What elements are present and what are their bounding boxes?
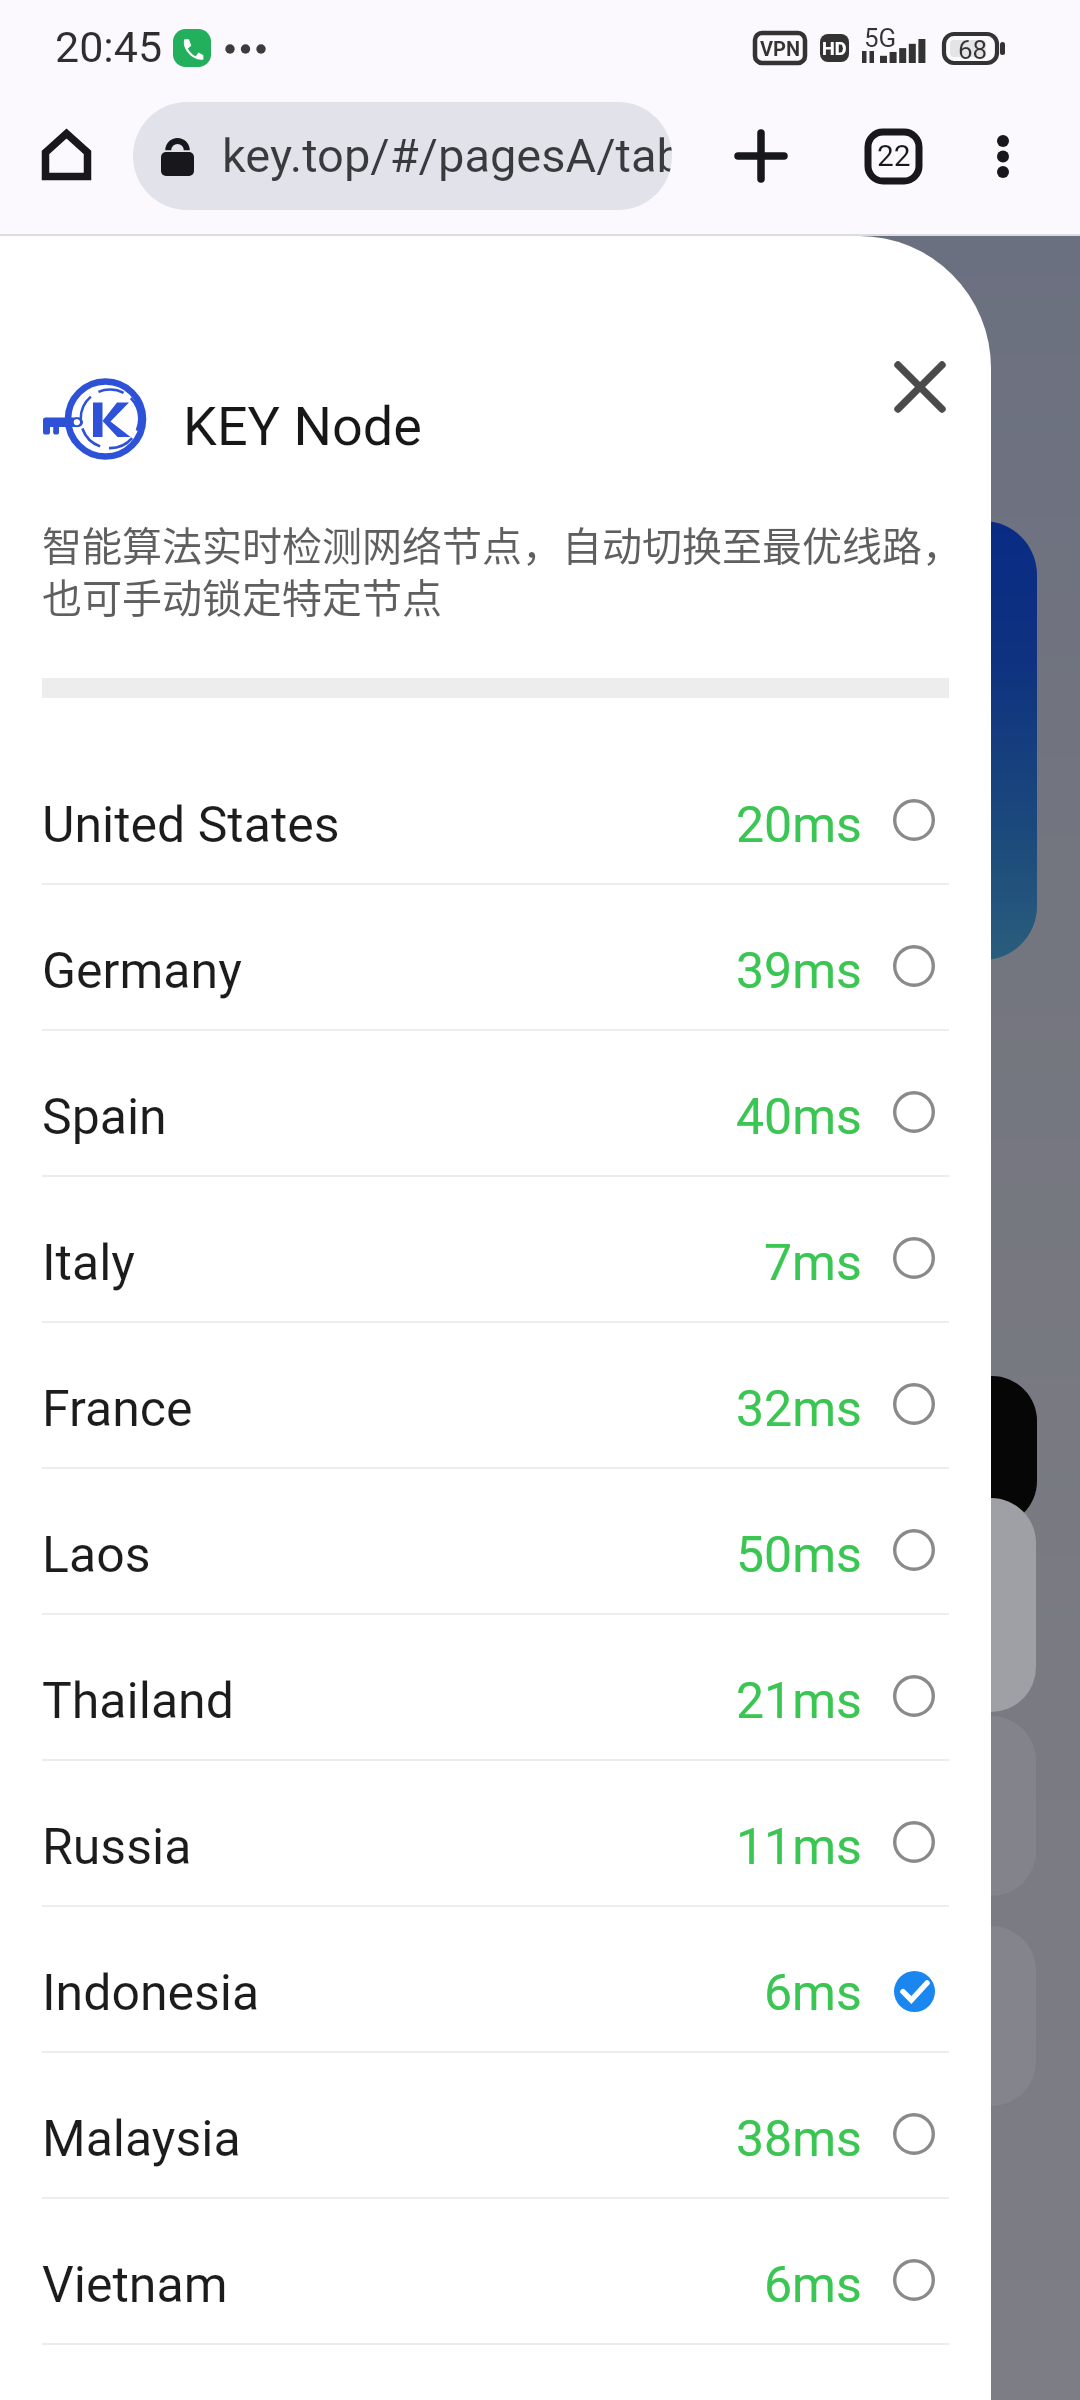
staticText: 5G [864,23,897,53]
button[interactable]: Russia [0,1761,991,1907]
staticText: France [42,1380,193,1439]
button[interactable]: Home [19,108,113,202]
button[interactable]: France [0,1323,991,1469]
staticText: Germany [42,942,242,1001]
button[interactable]: Vietnam [0,2199,991,2345]
staticText: 智能算法实时检测网络节点，自动切换至最优线路，也可手动锁定特定节点 [42,515,967,624]
button[interactable]: More options [950,103,1056,209]
staticText: 40ms [736,1088,862,1147]
staticText: HD [822,38,847,59]
staticText: 39ms [736,942,862,1001]
staticText: VPN [760,37,801,60]
button[interactable]: key.top/#/pagesA/tab [133,102,672,210]
staticText: 6ms [764,1964,862,2023]
staticText: Indonesia [42,1964,260,2023]
staticText: key.top/#/pagesA/tab [222,128,672,183]
staticText: Spain [42,1088,167,1147]
button[interactable]: Germany [0,885,991,1031]
staticText: Laos [42,1526,151,1585]
button[interactable]: Italy [0,1177,991,1323]
staticText: 38ms [736,2110,862,2169]
button[interactable]: Spain [0,1031,991,1177]
staticText: Russia [42,1818,192,1877]
button[interactable]: Close [865,332,975,442]
staticText: Italy [42,1234,135,1293]
staticText: United States [42,796,340,855]
button[interactable]: Tabs [840,103,946,209]
staticText: 20:45 [55,22,163,72]
staticText: 20ms [736,796,862,855]
staticText: 32ms [736,1380,862,1439]
button[interactable]: Thailand [0,1615,991,1761]
button[interactable]: Indonesia [0,1907,991,2053]
staticText: 50ms [736,1526,862,1585]
staticText: 7ms [764,1234,862,1293]
staticText: Malaysia [42,2110,241,2169]
button[interactable]: Malaysia [0,2053,991,2199]
button[interactable]: New tab [708,103,814,209]
staticText: 22 [877,138,911,173]
staticText: 11ms [736,1818,862,1877]
staticText: KEY Node [183,395,422,458]
staticText: Thailand [42,1672,234,1731]
staticText: 6ms [764,2256,862,2315]
staticText: Vietnam [42,2256,228,2315]
button[interactable]: United States [0,739,991,885]
staticText: 21ms [736,1672,862,1731]
button[interactable]: Laos [0,1469,991,1615]
staticText: 68 [958,35,988,64]
